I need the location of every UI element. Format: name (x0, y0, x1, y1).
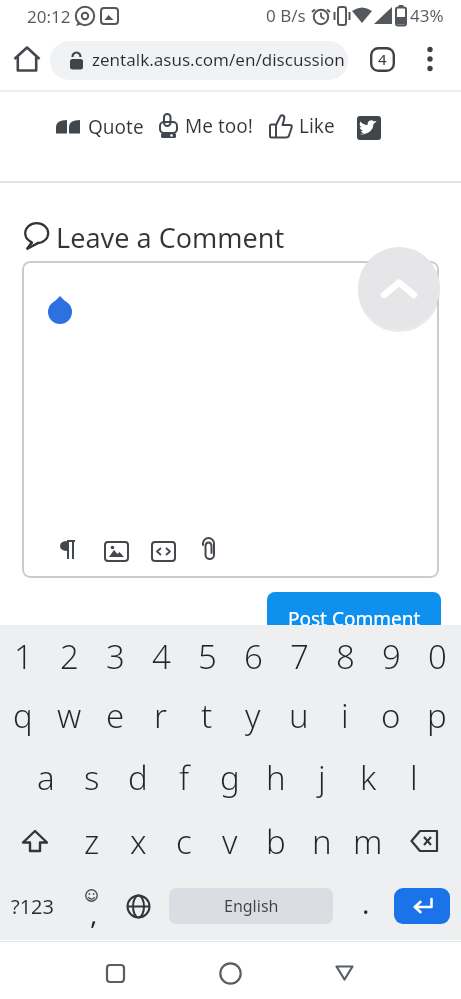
staticText: h (266, 755, 286, 800)
button[interactable]: 3 (92, 630, 138, 682)
button[interactable]: 0 (414, 630, 460, 682)
button[interactable] (210, 953, 250, 993)
staticText: Me too! (185, 113, 253, 139)
staticText: 0 (428, 634, 447, 679)
button[interactable]: w (46, 689, 92, 741)
button[interactable] (400, 816, 450, 866)
staticText: b (266, 819, 286, 864)
button[interactable] (10, 42, 44, 76)
staticText: q (13, 693, 33, 738)
button[interactable]: y (230, 689, 276, 741)
staticText: 4 (152, 634, 171, 679)
button[interactable]: e (92, 689, 138, 741)
staticText: 0 B/s (266, 4, 306, 27)
button[interactable]: i (322, 689, 368, 741)
staticText: Quote (88, 114, 144, 140)
staticText: o (381, 693, 401, 738)
button[interactable]: 2 (46, 630, 92, 682)
button[interactable]: 1 (0, 630, 46, 682)
button[interactable]: q (0, 689, 46, 741)
button[interactable]: ?123 (4, 884, 60, 928)
button[interactable] (116, 884, 160, 928)
button[interactable]: g (207, 751, 253, 803)
button[interactable]: t (184, 689, 230, 741)
staticText: Like (299, 113, 335, 139)
staticText: u (289, 693, 309, 738)
button[interactable]: . (344, 884, 388, 928)
button[interactable]: f (161, 751, 207, 803)
staticText: w (57, 693, 82, 738)
button[interactable]: , (68, 880, 112, 928)
button[interactable]: n (299, 815, 345, 867)
staticText: v (222, 819, 238, 864)
button[interactable]: 5 (184, 630, 230, 682)
staticText: x (130, 819, 147, 864)
staticText: , (90, 894, 98, 932)
button[interactable] (358, 247, 440, 329)
button[interactable]: English (169, 888, 333, 924)
button[interactable]: h (253, 751, 299, 803)
button[interactable]: x (115, 815, 161, 867)
staticText: 7 (290, 634, 309, 679)
button[interactable] (324, 953, 364, 993)
button[interactable]: Quote (56, 114, 144, 140)
staticText: a (37, 755, 55, 800)
staticText: z (84, 819, 100, 864)
button[interactable] (418, 44, 442, 74)
button[interactable]: 4 (368, 45, 396, 73)
button[interactable]: m (345, 815, 391, 867)
button[interactable]: 4 (138, 630, 184, 682)
button[interactable]: z (69, 815, 115, 867)
staticText: p (427, 693, 447, 738)
staticText: i (341, 693, 349, 738)
button[interactable]: Post Comment (267, 592, 441, 632)
button[interactable]: Me too! (157, 113, 253, 139)
staticText: t (201, 693, 213, 738)
staticText: k (360, 755, 377, 800)
button[interactable]: s (69, 751, 115, 803)
button[interactable]: Like (269, 113, 335, 139)
button[interactable]: 8 (322, 630, 368, 682)
button[interactable] (357, 116, 381, 140)
button[interactable]: l (391, 751, 437, 803)
staticText: c (176, 819, 192, 864)
staticText: 3 (106, 634, 125, 679)
staticText: j (318, 755, 326, 800)
staticText: 4 (378, 49, 387, 69)
button[interactable]: zentalk.asus.com/en/discussion (50, 41, 348, 80)
button[interactable]: b (253, 815, 299, 867)
button[interactable]: k (345, 751, 391, 803)
staticText: 43% (410, 4, 444, 27)
staticText: r (154, 693, 168, 738)
staticText: s (84, 755, 100, 800)
button[interactable]: c (161, 815, 207, 867)
button[interactable]: a (23, 751, 69, 803)
button[interactable]: d (115, 751, 161, 803)
staticText: 6 (244, 634, 263, 679)
staticText: ?123 (11, 893, 54, 920)
button[interactable]: j (299, 751, 345, 803)
button[interactable]: v (207, 815, 253, 867)
button[interactable]: p (414, 689, 460, 741)
button[interactable]: r (138, 689, 184, 741)
button[interactable]: 7 (276, 630, 322, 682)
staticText: English (224, 895, 279, 917)
button[interactable]: o (368, 689, 414, 741)
button[interactable] (394, 888, 450, 924)
staticText: . (362, 884, 370, 914)
staticText: n (312, 819, 332, 864)
staticText: 9 (382, 634, 401, 679)
staticText: 5 (198, 634, 217, 679)
button[interactable]: 6 (230, 630, 276, 682)
button[interactable] (95, 953, 135, 993)
staticText: f (179, 755, 190, 800)
staticText: Post Comment (288, 606, 421, 632)
staticText: Leave a Comment (56, 219, 285, 256)
button[interactable]: 9 (368, 630, 414, 682)
staticText: g (220, 755, 240, 800)
button[interactable] (22, 261, 439, 578)
button[interactable]: u (276, 689, 322, 741)
staticText: e (106, 693, 125, 738)
button[interactable] (10, 816, 60, 866)
staticText: l (410, 755, 418, 800)
